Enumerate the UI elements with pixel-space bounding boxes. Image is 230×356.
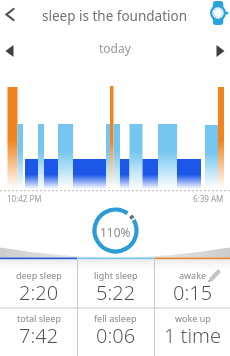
staticText: 0:15 <box>173 279 213 306</box>
staticText: awake <box>179 269 207 281</box>
staticText: 6:39 AM <box>193 193 224 204</box>
staticText: 10:42 PM <box>7 193 42 204</box>
staticText: 1 time <box>164 322 221 349</box>
staticText: woke up <box>175 312 211 324</box>
staticText: sleep is the foundation <box>42 7 188 25</box>
staticText: 7:42 <box>19 322 59 349</box>
staticText: total sleep <box>17 312 61 324</box>
staticText: 2:20 <box>19 279 59 306</box>
staticText: 5:22 <box>96 279 136 306</box>
staticText: today <box>99 40 131 56</box>
staticText: light sleep <box>94 269 138 281</box>
staticText: fell asleep <box>94 312 137 324</box>
staticText: 110% <box>100 224 131 240</box>
staticText: 0:06 <box>96 322 136 349</box>
staticText: deep sleep <box>16 269 62 281</box>
